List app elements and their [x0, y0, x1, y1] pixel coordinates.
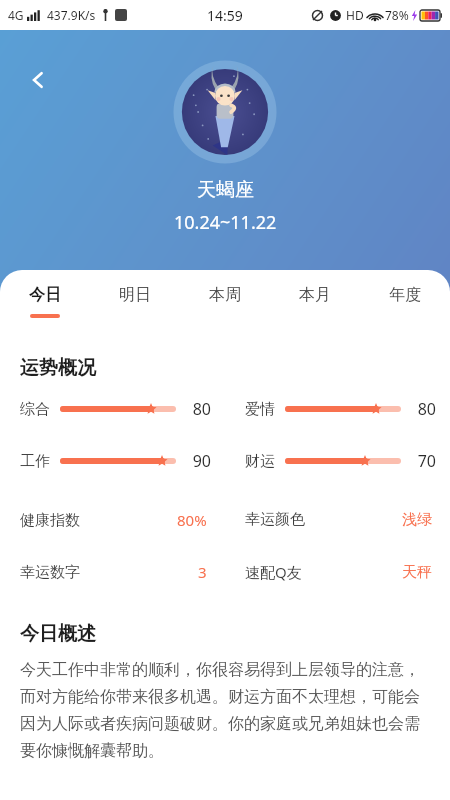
staticText: 本周: [209, 285, 241, 305]
staticText: 速配Q友: [245, 562, 302, 582]
staticText: 今天工作中非常的顺利，你很容易得到上层领导的注意，而对方能给你带来很多机遇。财运…: [20, 660, 430, 761]
button[interactable]: 本月: [270, 270, 360, 332]
staticText: 健康指数: [20, 511, 80, 530]
staticText: 今日: [29, 285, 61, 305]
staticText: 今日概述: [20, 622, 96, 646]
staticText: 80%: [177, 510, 207, 530]
staticText: 70: [410, 450, 436, 472]
staticText: 财运: [245, 452, 275, 471]
staticText: 14:59: [207, 6, 243, 25]
staticText: 天蝎座: [197, 178, 254, 202]
button[interactable]: 返回: [16, 58, 60, 102]
staticText: 幸运数字: [20, 563, 80, 582]
staticText: 天秤: [402, 563, 432, 582]
staticText: 437.9K/s: [47, 7, 96, 23]
staticText: 综合: [20, 400, 50, 419]
staticText: 3: [198, 562, 207, 582]
button[interactable]: 本周: [180, 270, 270, 332]
staticText: 4G: [8, 7, 24, 23]
button[interactable]: 明日: [90, 270, 180, 332]
staticText: 工作: [20, 452, 50, 471]
staticText: 幸运颜色: [245, 510, 305, 529]
staticText: HD: [346, 7, 364, 23]
staticText: 90: [185, 450, 211, 472]
button[interactable]: 年度: [360, 270, 450, 332]
staticText: 运势概况: [20, 356, 96, 380]
staticText: 年度: [389, 285, 421, 305]
staticText: 明日: [119, 285, 151, 305]
staticText: 78%: [385, 7, 409, 23]
staticText: 80: [185, 398, 211, 420]
staticText: 爱情: [245, 400, 275, 419]
staticText: 10.24~11.22: [174, 210, 277, 235]
staticText: 本月: [299, 285, 331, 305]
button[interactable]: 今日: [0, 270, 90, 332]
staticText: 浅绿: [402, 510, 432, 529]
staticText: 80: [410, 398, 436, 420]
